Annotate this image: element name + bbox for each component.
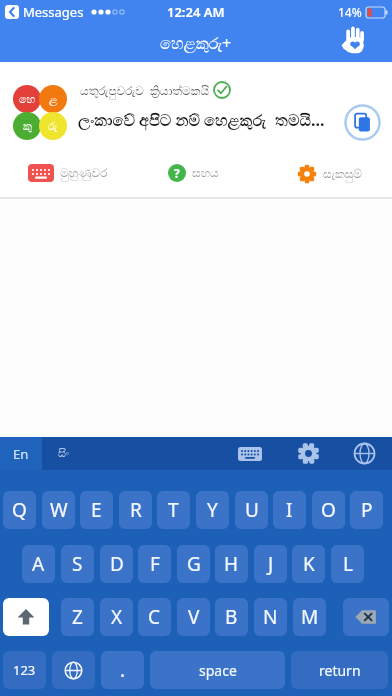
staticText: P xyxy=(361,497,373,523)
button[interactable]: S xyxy=(61,545,94,583)
button[interactable]: F xyxy=(138,545,171,583)
staticText: K xyxy=(303,551,315,577)
staticText: X xyxy=(111,604,123,630)
button[interactable]: T xyxy=(157,491,190,529)
button[interactable]: D xyxy=(100,545,133,583)
staticText: රු xyxy=(48,121,58,132)
button[interactable]: H xyxy=(215,545,248,583)
staticText: R xyxy=(130,497,142,523)
staticText: S xyxy=(72,551,83,577)
button[interactable]: 123 xyxy=(3,651,46,689)
button[interactable]: සිං xyxy=(42,437,84,470)
staticText: ලංකාවේ අපිට නම් හෙළකුරු තමයි... xyxy=(78,109,325,131)
button[interactable]: R xyxy=(119,491,152,529)
staticText: සැකසුම් xyxy=(323,168,362,180)
button[interactable]: Z xyxy=(61,598,94,636)
button[interactable]: සැකසුම් xyxy=(297,164,362,184)
staticText: යතුරුපුවරුව ක්‍රියාත්මකයි xyxy=(80,82,210,98)
button[interactable]: space xyxy=(150,651,285,689)
button[interactable]: E xyxy=(80,491,113,529)
button[interactable]: K xyxy=(292,545,325,583)
staticText: B xyxy=(225,604,238,630)
staticText: හෙ xyxy=(19,94,36,105)
button[interactable] xyxy=(3,598,49,636)
staticText: සහය xyxy=(192,167,219,179)
button[interactable] xyxy=(341,26,365,55)
staticText: D xyxy=(110,551,124,577)
button[interactable]: ? xyxy=(168,164,219,182)
staticText: V xyxy=(188,604,200,630)
button[interactable]: P xyxy=(350,491,383,529)
staticText: හෙළකුරු+ xyxy=(160,32,232,54)
staticText: Q xyxy=(12,497,27,523)
button[interactable]: G xyxy=(177,545,210,583)
staticText: කු xyxy=(23,121,32,132)
button[interactable]: C xyxy=(138,598,171,636)
button[interactable]: Messages xyxy=(5,3,125,21)
button[interactable]: B xyxy=(215,598,248,636)
button[interactable]: මුහුණුවර xyxy=(28,164,108,182)
staticText: W xyxy=(50,497,68,523)
staticText: G xyxy=(187,551,201,577)
staticText: F xyxy=(150,551,160,577)
button[interactable] xyxy=(238,442,262,466)
button[interactable]: Q xyxy=(3,491,36,529)
staticText: C xyxy=(148,604,161,630)
staticText: N xyxy=(263,604,278,630)
staticText: A xyxy=(32,551,45,577)
button[interactable]: M xyxy=(293,598,326,636)
button[interactable]: L xyxy=(331,545,364,583)
button[interactable] xyxy=(344,104,381,141)
button[interactable]: X xyxy=(100,598,133,636)
button[interactable]: Y xyxy=(196,491,229,529)
button[interactable]: W xyxy=(42,491,75,529)
staticText: ළ xyxy=(49,94,58,105)
staticText: H xyxy=(224,551,239,577)
staticText: Z xyxy=(72,604,83,630)
staticText: 14% xyxy=(338,4,362,20)
button[interactable]: U xyxy=(235,491,268,529)
button[interactable] xyxy=(52,651,95,689)
staticText: O xyxy=(321,497,336,523)
staticText: 12:24 AM xyxy=(167,3,225,21)
button[interactable]: J xyxy=(254,545,287,583)
button[interactable]: A xyxy=(22,545,55,583)
button[interactable]: V xyxy=(177,598,210,636)
button[interactable] xyxy=(353,442,376,465)
staticText: En xyxy=(13,445,29,463)
button[interactable]: N xyxy=(254,598,287,636)
button[interactable]: O xyxy=(312,491,345,529)
button[interactable] xyxy=(343,598,389,636)
staticText: E xyxy=(91,497,102,523)
staticText: I xyxy=(286,497,293,523)
staticText: . xyxy=(120,657,126,683)
staticText: space xyxy=(199,661,237,680)
staticText: M xyxy=(301,604,319,630)
button[interactable] xyxy=(297,442,320,465)
staticText: Y xyxy=(207,497,218,523)
staticText: සිං xyxy=(58,448,69,459)
button[interactable]: I xyxy=(273,491,306,529)
button[interactable]: . xyxy=(101,651,144,689)
staticText: L xyxy=(343,551,353,577)
staticText: T xyxy=(168,497,179,523)
staticText: ? xyxy=(174,165,180,181)
staticText: return xyxy=(319,661,361,680)
button[interactable]: En xyxy=(0,437,42,470)
staticText: Messages xyxy=(23,3,84,21)
staticText: J xyxy=(268,551,274,577)
staticText: 123 xyxy=(13,661,36,679)
button[interactable]: return xyxy=(291,651,388,689)
staticText: U xyxy=(245,497,259,523)
staticText: මුහුණුවර xyxy=(60,167,108,179)
